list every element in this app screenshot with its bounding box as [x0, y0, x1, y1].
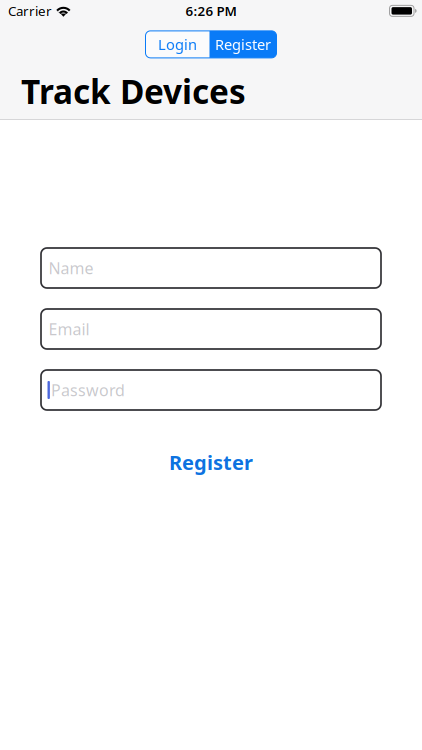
- button[interactable]: Email: [41, 309, 381, 349]
- button[interactable]: Register: [157, 446, 265, 479]
- staticText: Carrier: [8, 2, 52, 20]
- button[interactable]: Name: [41, 248, 381, 288]
- staticText: Login: [158, 35, 197, 54]
- staticText: Password: [51, 379, 125, 401]
- staticText: 6:26 PM: [185, 2, 236, 20]
- staticText: Register: [169, 449, 253, 476]
- staticText: Name: [48, 257, 93, 279]
- staticText: Register: [215, 35, 271, 54]
- staticText: Email: [48, 318, 89, 340]
- button[interactable]: Register: [209, 31, 276, 58]
- button[interactable]: Password: [41, 370, 381, 410]
- staticText: Track Devices: [21, 69, 246, 113]
- button[interactable]: Login: [145, 31, 209, 58]
